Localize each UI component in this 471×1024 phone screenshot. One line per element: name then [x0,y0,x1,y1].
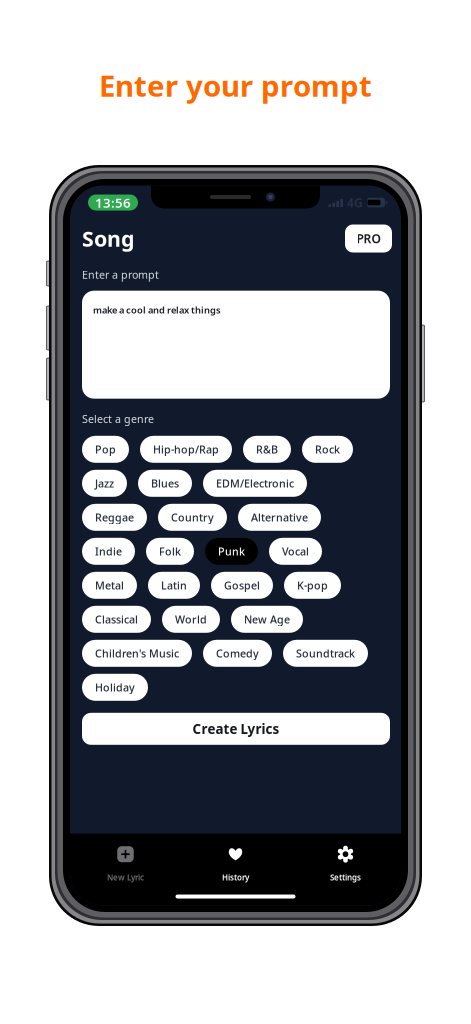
staticText: make a cool and relax things [93,304,221,316]
staticText: New Age [244,612,290,626]
staticText: Create Lyrics [192,720,279,738]
button[interactable]: Reggae [82,504,147,531]
button[interactable]: Jazz [82,470,127,497]
staticText: Rock [315,442,340,456]
staticText: Settings [330,872,361,883]
button[interactable]: Metal [82,572,137,599]
staticText: Folk [159,544,181,558]
staticText: Country [171,510,214,524]
staticText: Gospel [224,578,260,592]
button[interactable]: Latin [148,572,200,599]
staticText: New Lyric [107,872,144,883]
staticText: Children's Music [95,646,179,660]
button[interactable]: Create Lyrics [82,713,390,745]
button[interactable]: Pop [82,436,129,463]
button[interactable]: R&B [243,436,291,463]
button[interactable]: History [180,842,290,886]
staticText: Latin [161,578,187,592]
staticText: 4G [347,194,363,210]
button[interactable]: Folk [146,538,194,565]
button[interactable]: Indie [82,538,135,565]
staticText: Punk [218,544,245,558]
staticText: Select a genre [82,412,154,426]
button[interactable]: Comedy [203,640,272,667]
button[interactable]: Rock [302,436,353,463]
button[interactable]: K-pop [284,572,341,599]
staticText: Blues [151,476,179,490]
button[interactable]: PRO [345,224,392,252]
staticText: Metal [95,578,124,592]
button[interactable]: Punk [205,538,258,565]
button[interactable]: Children's Music [82,640,192,667]
button[interactable]: Country [158,504,227,531]
button[interactable]: Holiday [82,674,148,701]
staticText: Reggae [95,510,134,524]
staticText: 13:56 [95,194,131,211]
staticText: Pop [95,442,116,456]
staticText: World [175,612,207,626]
button[interactable]: Hip-hop/Rap [140,436,232,463]
staticText: Indie [95,544,122,558]
button[interactable]: Settings [290,842,400,886]
button[interactable]: Classical [82,606,151,633]
staticText: K-pop [297,578,328,592]
button[interactable]: EDM/Electronic [203,470,307,497]
button[interactable]: World [162,606,220,633]
button[interactable]: Soundtrack [283,640,368,667]
staticText: Comedy [216,646,259,660]
staticText: Hip-hop/Rap [153,442,219,456]
staticText: Classical [95,612,138,626]
staticText: PRO [356,230,380,246]
staticText: Enter a prompt [82,267,159,282]
staticText: Vocal [282,544,309,558]
staticText: Song [82,224,134,253]
button[interactable]: Blues [138,470,192,497]
staticText: Alternative [251,510,308,524]
staticText: R&B [256,442,278,456]
staticText: Holiday [95,680,135,694]
staticText: Enter your prompt [99,66,372,105]
staticText: Soundtrack [296,646,355,660]
button[interactable]: Vocal [269,538,322,565]
staticText: Jazz [95,476,114,490]
button[interactable]: Alternative [238,504,321,531]
button[interactable]: New Age [231,606,303,633]
button[interactable]: New Lyric [70,842,180,886]
staticText: History [222,872,249,883]
button[interactable]: Gospel [211,572,273,599]
staticText: EDM/Electronic [216,476,294,490]
